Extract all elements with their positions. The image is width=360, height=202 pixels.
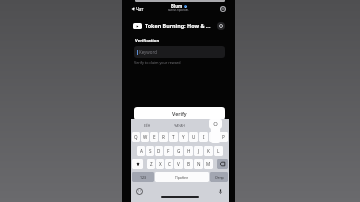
staticText: T xyxy=(172,134,175,140)
other: O key pressed xyxy=(209,119,222,143)
button[interactable]: T xyxy=(169,132,178,142)
button[interactable]: U xyxy=(189,132,198,142)
staticText: R xyxy=(162,134,165,140)
staticText: Keyword xyxy=(139,49,157,55)
button[interactable]: X xyxy=(156,159,164,169)
staticText: F xyxy=(167,148,170,154)
staticText: W xyxy=(143,134,148,140)
button[interactable]: E xyxy=(150,132,158,142)
button[interactable]: Minimize xyxy=(219,5,227,13)
staticText: Verification xyxy=(135,38,160,44)
staticText: P xyxy=(222,134,225,140)
button[interactable]: ЧАЧАЧ xyxy=(163,119,196,131)
staticText: Y xyxy=(182,134,185,140)
button[interactable]: Shift xyxy=(132,159,143,169)
button[interactable]: Пробел xyxy=(155,172,209,182)
button[interactable]: ЕЁН xyxy=(131,119,163,131)
button[interactable]: Отпр xyxy=(210,172,228,182)
button[interactable]: I xyxy=(199,132,208,142)
button[interactable]: Q xyxy=(132,132,140,142)
staticText: Z xyxy=(150,161,153,167)
button[interactable]: 123 xyxy=(132,172,154,182)
staticText: V xyxy=(177,161,180,167)
staticText: ЧАЧАЧ xyxy=(174,123,185,128)
staticText: Пробел xyxy=(175,175,189,180)
button[interactable]: R xyxy=(159,132,168,142)
button[interactable]: L xyxy=(214,146,223,156)
button[interactable]: K xyxy=(204,146,213,156)
staticText: M xyxy=(206,161,211,167)
button[interactable]: N xyxy=(194,159,203,169)
staticText: S xyxy=(149,148,152,154)
button[interactable]: B xyxy=(184,159,193,169)
button[interactable]: Keyword xyxy=(134,46,225,58)
button[interactable]: S xyxy=(146,146,154,156)
staticText: N xyxy=(197,161,201,167)
button[interactable]: F xyxy=(164,146,173,156)
staticText: Verify to claim your reward xyxy=(134,60,181,65)
button[interactable]: Back to chat xyxy=(132,5,144,12)
button[interactable]: Dictation xyxy=(217,188,224,195)
button[interactable]: Verify xyxy=(134,107,225,120)
staticText: O xyxy=(213,120,218,128)
button[interactable]: P xyxy=(219,132,228,142)
staticText: Отпр xyxy=(215,175,224,180)
button[interactable]: Token Burning: How & ... xyxy=(133,21,225,30)
button[interactable] xyxy=(196,119,229,131)
button[interactable]: M xyxy=(204,159,213,169)
staticText: мини-прилож. xyxy=(168,8,189,12)
staticText: Verify xyxy=(172,110,187,117)
staticText: 123 xyxy=(140,175,147,180)
staticText: A xyxy=(140,148,143,154)
button[interactable]: H xyxy=(184,146,193,156)
staticText: Token Burning: How & ... xyxy=(145,22,211,29)
staticText: D xyxy=(157,148,161,154)
button[interactable]: Backspace xyxy=(217,159,228,169)
button[interactable]: W xyxy=(141,132,149,142)
staticText: L xyxy=(217,148,220,154)
staticText: K xyxy=(207,148,210,154)
staticText: Чат xyxy=(136,6,144,12)
staticText: B xyxy=(187,161,190,167)
button[interactable]: Share xyxy=(217,22,225,30)
staticText: I xyxy=(203,134,205,140)
button[interactable]: Emoji xyxy=(136,188,143,195)
staticText: Q xyxy=(134,134,138,140)
staticText: H xyxy=(187,148,191,154)
staticText: C xyxy=(168,161,171,167)
staticText: X xyxy=(159,161,162,167)
button[interactable] xyxy=(209,132,218,142)
button[interactable]: C xyxy=(165,159,173,169)
staticText: J xyxy=(198,148,200,154)
staticText: Blum xyxy=(171,3,183,9)
staticText: E xyxy=(153,134,156,140)
button[interactable]: A xyxy=(137,146,145,156)
button[interactable]: G xyxy=(174,146,183,156)
staticText: U xyxy=(192,134,196,140)
button[interactable]: D xyxy=(155,146,163,156)
button[interactable]: Z xyxy=(147,159,155,169)
staticText: G xyxy=(177,148,181,154)
button[interactable]: V xyxy=(174,159,183,169)
button[interactable]: J xyxy=(194,146,203,156)
staticText: ЕЁН xyxy=(144,123,151,128)
button[interactable]: Y xyxy=(179,132,188,142)
